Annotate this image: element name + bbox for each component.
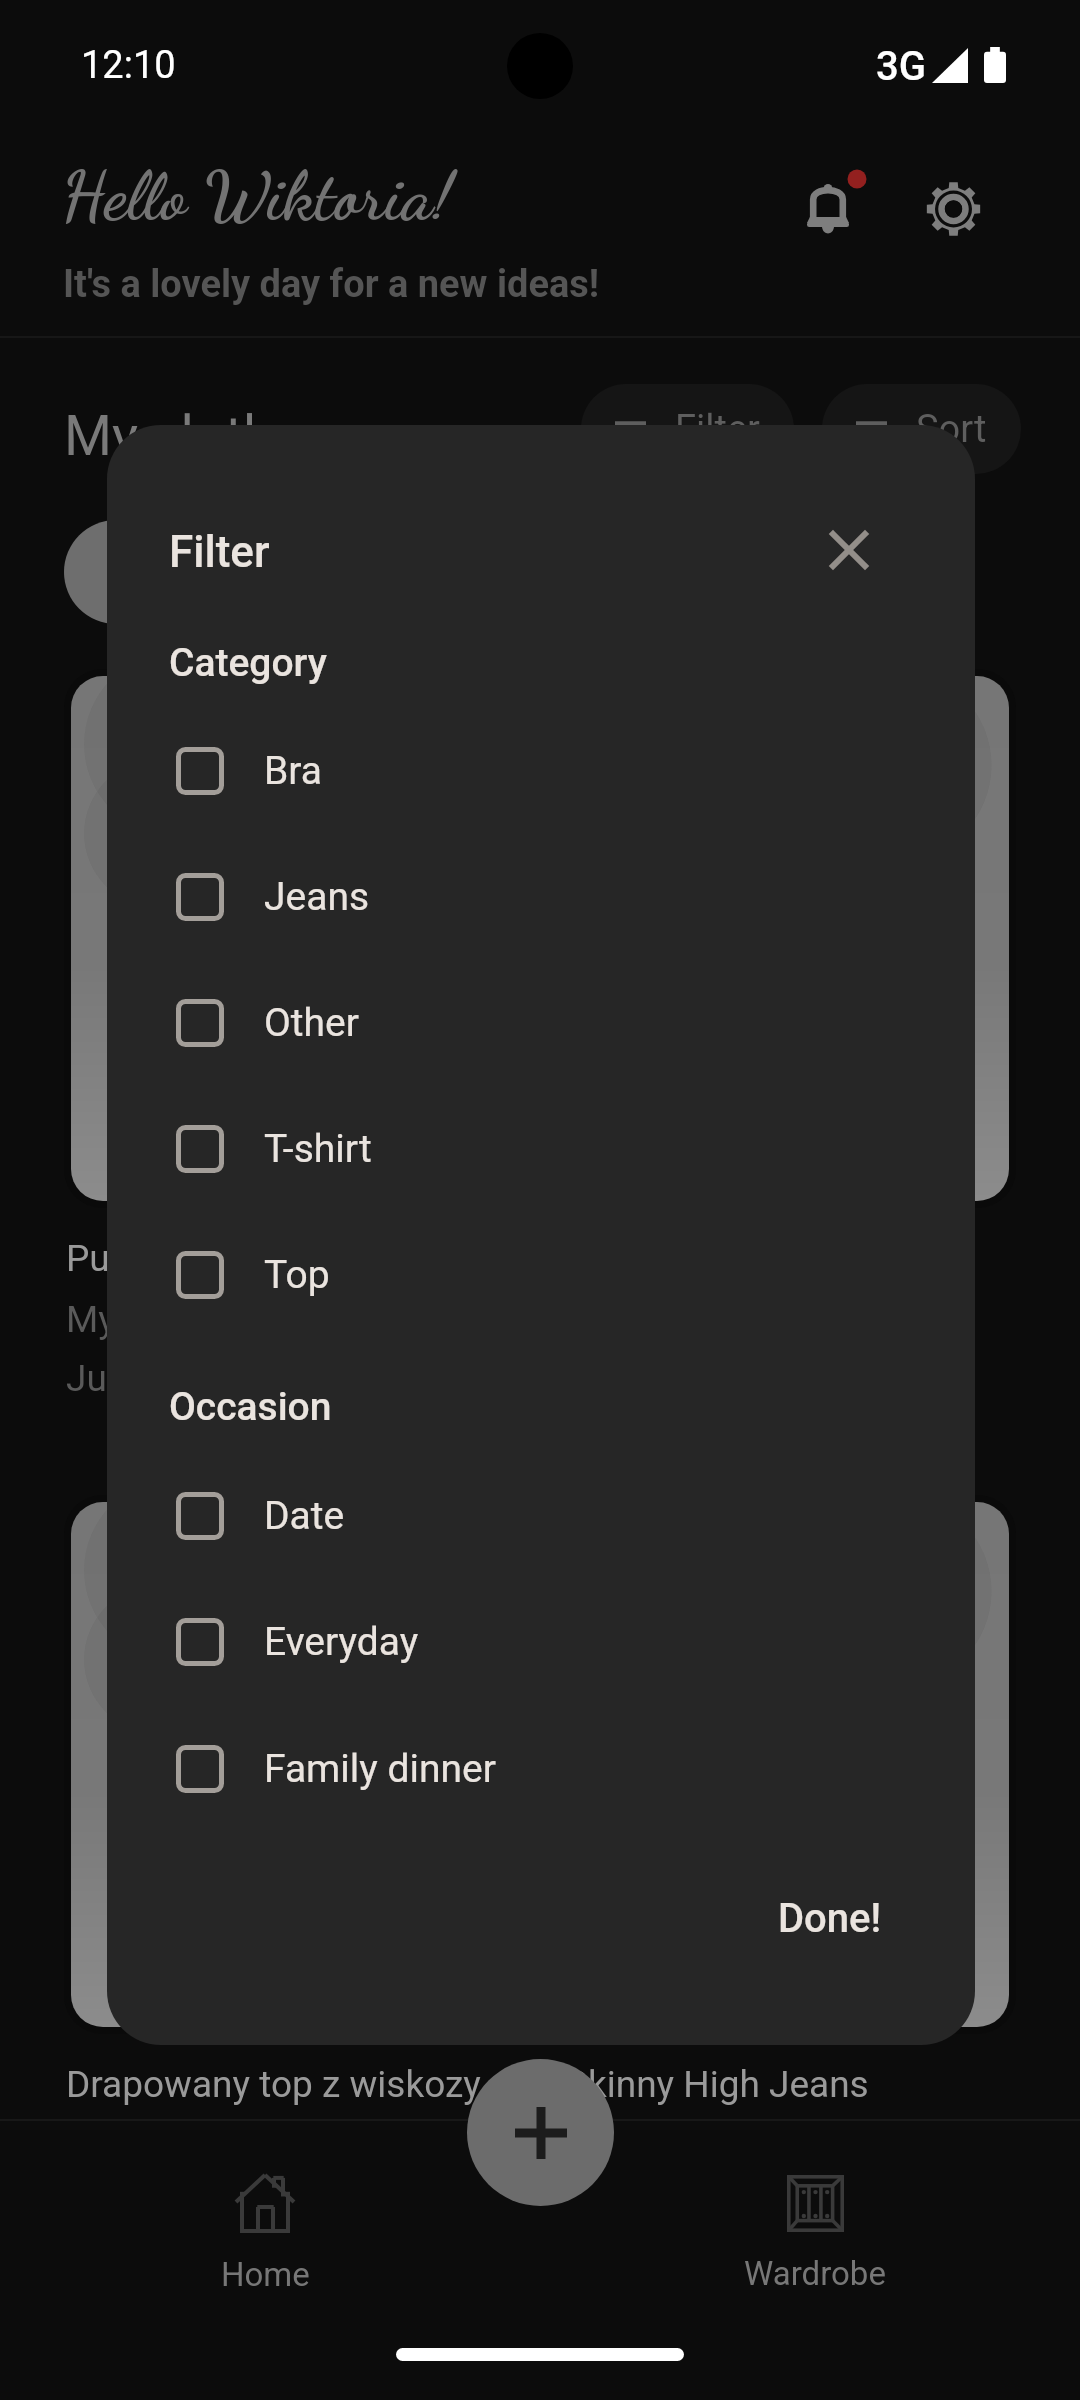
button[interactable]: Date bbox=[107, 1453, 975, 1579]
button[interactable] bbox=[64, 1495, 516, 2034]
button[interactable]: Wardrobe bbox=[690, 2175, 940, 2293]
button[interactable] bbox=[564, 1495, 1016, 2034]
staticText: Everyday bbox=[566, 2124, 713, 2167]
staticText: Skinny High Jeans bbox=[566, 2063, 869, 2106]
button[interactable]: Home bbox=[140, 2175, 390, 2294]
staticText: Filter bbox=[675, 407, 760, 452]
button[interactable]: T-shirt bbox=[107, 1086, 975, 1212]
button[interactable]: Close bbox=[799, 500, 899, 600]
button[interactable]: Jeans bbox=[107, 834, 975, 960]
staticText: Everyday bbox=[264, 1619, 419, 1665]
staticText: Puchaty sweterek bbox=[66, 1237, 358, 1280]
staticText: Family dinner bbox=[264, 1746, 496, 1792]
button[interactable]: Family dinner bbox=[107, 1706, 975, 1832]
button[interactable] bbox=[64, 669, 516, 1208]
button[interactable]: Add new item bbox=[467, 2059, 614, 2206]
staticText: Top bbox=[264, 1252, 330, 1298]
button[interactable]: Notifications bbox=[796, 168, 876, 248]
button[interactable]: Settings bbox=[925, 172, 997, 244]
staticText: Wardrobe bbox=[744, 2254, 886, 2293]
button[interactable]: Other bbox=[107, 960, 975, 1086]
staticText: Home bbox=[221, 2255, 310, 2294]
button[interactable]: Category 6 bbox=[744, 520, 848, 624]
staticText: Just perfect bbox=[66, 1357, 264, 1400]
staticText: Category bbox=[169, 640, 327, 686]
staticText: Jeans bbox=[264, 874, 370, 920]
button[interactable]: Filter bbox=[581, 384, 794, 474]
staticText: Other bbox=[264, 1000, 359, 1046]
button[interactable]: Category 2 bbox=[200, 520, 304, 624]
staticText: T-shirt bbox=[264, 1126, 372, 1172]
staticText: Sort bbox=[916, 407, 987, 452]
button[interactable] bbox=[564, 669, 1016, 1208]
staticText: Occasion bbox=[169, 1384, 332, 1430]
button[interactable]: Category 1 bbox=[64, 520, 168, 624]
button[interactable]: Sort bbox=[822, 384, 1021, 474]
staticText: 12:10 bbox=[81, 43, 176, 88]
button[interactable]: Top bbox=[107, 1212, 975, 1338]
staticText: It's a lovely day for a new ideas! bbox=[63, 262, 600, 307]
staticText: Filter bbox=[169, 526, 270, 578]
staticText: Hello Wiktoria! bbox=[61, 155, 453, 237]
staticText: Bra bbox=[264, 748, 322, 794]
staticText: My clothes bbox=[64, 404, 332, 468]
staticText: My favourite bbox=[66, 1298, 271, 1341]
staticText: Drapowany top z wiskozy bbox=[66, 2063, 481, 2106]
button[interactable]: Everyday bbox=[107, 1579, 975, 1705]
button[interactable]: Done! bbox=[758, 1879, 902, 1958]
staticText: Done! bbox=[778, 1895, 882, 1942]
staticText: 3G bbox=[876, 43, 926, 90]
button[interactable]: Bra bbox=[107, 708, 975, 834]
staticText: Date bbox=[264, 1493, 345, 1539]
staticText: Comfy fit bbox=[566, 2183, 716, 2226]
